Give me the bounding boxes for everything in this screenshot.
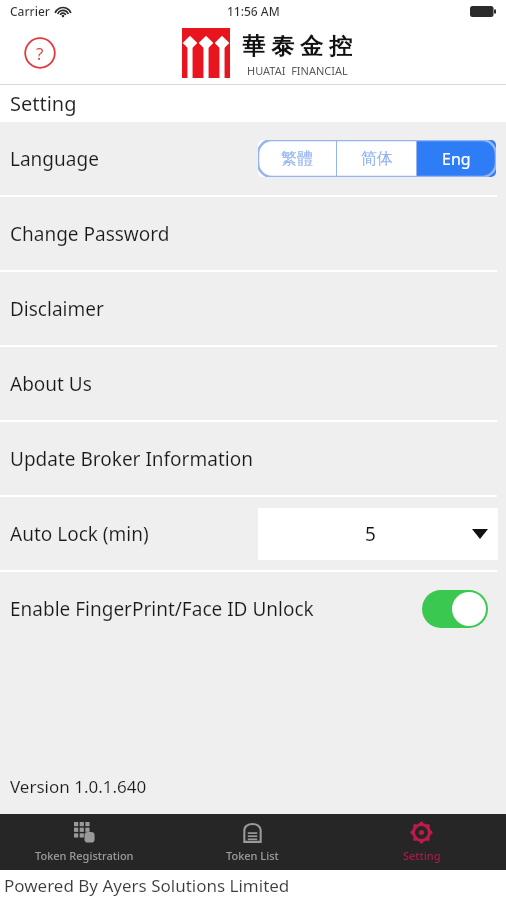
staticText: Carrier: [10, 3, 50, 19]
button[interactable]: Token Registration: [0, 814, 168, 870]
button[interactable]: Eng: [417, 140, 496, 177]
button[interactable]: Change Password: [0, 197, 506, 270]
staticText: Disclaimer: [10, 296, 104, 322]
staticText: Setting: [403, 848, 441, 863]
staticText: Auto Lock (min): [10, 521, 149, 547]
button[interactable]: Auto Lock minutes: [258, 508, 498, 560]
staticText: 简体: [361, 149, 393, 169]
staticText: Token List: [226, 848, 279, 863]
button[interactable]: Disclaimer: [0, 272, 506, 345]
staticText: Update Broker Information: [10, 446, 253, 472]
staticText: Change Password: [10, 221, 170, 247]
staticText: About Us: [10, 371, 92, 397]
staticText: Token Registration: [35, 848, 134, 863]
staticText: 華 泰 金 控: [242, 29, 352, 60]
staticText: Powered By Ayers Solutions Limited: [4, 874, 290, 897]
button[interactable]: Enable FingerPrint Face ID Unlock: [422, 590, 488, 628]
staticText: Setting: [10, 90, 77, 117]
staticText: 繁體: [281, 149, 313, 169]
button[interactable]: Help: [22, 35, 58, 71]
staticText: HUATAI FINANCIAL: [247, 63, 348, 78]
staticText: 11:56 AM: [227, 3, 280, 19]
button[interactable]: 繁體: [258, 140, 336, 177]
staticText: Version 1.0.1.640: [10, 775, 147, 798]
button[interactable]: Setting: [337, 814, 506, 870]
staticText: 5: [365, 521, 376, 547]
staticText: Language: [10, 146, 99, 172]
button[interactable]: 简体: [337, 140, 416, 177]
staticText: Enable FingerPrint/Face ID Unlock: [10, 596, 314, 622]
button[interactable]: Token List: [168, 814, 337, 870]
staticText: ?: [36, 42, 44, 65]
button[interactable]: About Us: [0, 347, 506, 420]
staticText: Eng: [442, 148, 471, 170]
button[interactable]: Update Broker Information: [0, 422, 506, 495]
